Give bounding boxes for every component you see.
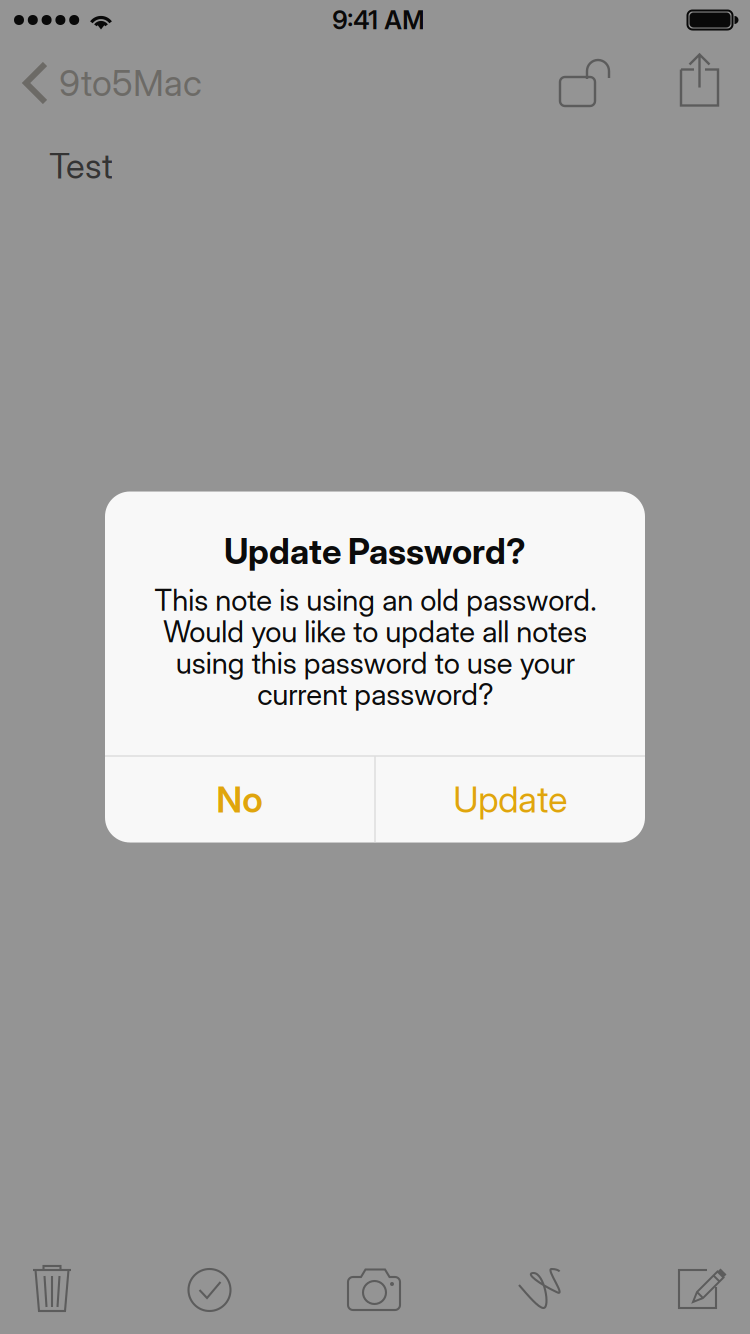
button[interactable]: 9to5Mac [0,40,214,116]
button[interactable]: Share [662,40,738,116]
button[interactable]: New Note [678,1262,726,1314]
button[interactable]: Lock Note [544,40,662,116]
staticText: Update [453,778,567,821]
staticText: Update Password? [224,530,526,572]
staticText: 9:41 AM [332,5,424,35]
button[interactable]: Update [375,756,645,842]
staticText: 9to5Mac [59,61,202,105]
button[interactable]: Delete [32,1262,72,1314]
staticText: Test [49,145,113,187]
button[interactable]: Markup [517,1262,561,1319]
button[interactable]: No [105,756,374,842]
button[interactable]: Camera [347,1262,401,1318]
staticText: This note is using an old password. Woul… [154,584,596,710]
staticText: No [216,778,263,821]
button[interactable]: Checklist [188,1262,230,1316]
